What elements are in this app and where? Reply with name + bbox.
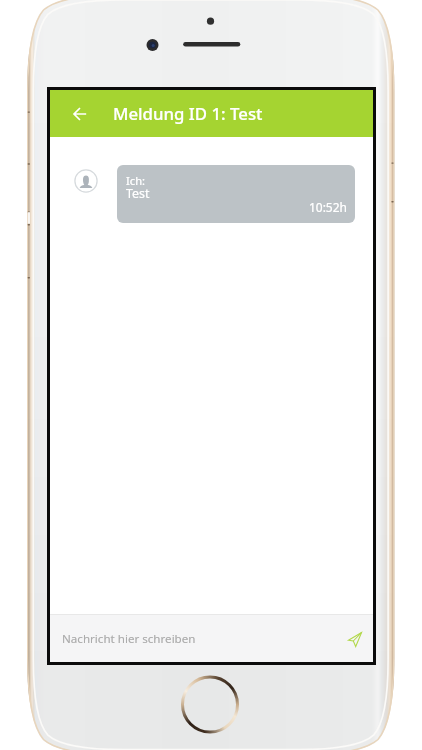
button[interactable]: Nachricht hier schreiben <box>62 631 340 647</box>
staticText: 10:52h <box>117 199 347 215</box>
button[interactable]: Send <box>340 616 370 662</box>
staticText: Ich: <box>126 173 146 188</box>
button[interactable]: Ich: <box>117 165 355 223</box>
button[interactable]: Back <box>58 90 102 137</box>
staticText: Test <box>126 185 150 202</box>
staticText: Meldung ID 1: Test <box>113 102 263 125</box>
